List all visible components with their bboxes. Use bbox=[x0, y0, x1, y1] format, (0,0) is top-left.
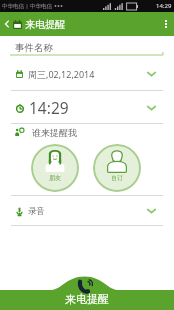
button[interactable]: 14:29 bbox=[0, 91, 174, 124]
button[interactable]: More options bbox=[158, 12, 174, 36]
button[interactable]: 自订 bbox=[93, 144, 141, 192]
button[interactable]: 事件名称 bbox=[0, 36, 174, 54]
button[interactable]: 谁来提醒我 bbox=[0, 124, 174, 140]
button[interactable]: 录音 bbox=[0, 196, 174, 226]
staticText: 谁来提醒我 bbox=[32, 127, 77, 138]
staticText: 中华电信 | 中华电信 bbox=[2, 2, 52, 10]
staticText: 14:29 bbox=[29, 97, 69, 118]
button[interactable]: Back bbox=[0, 12, 13, 36]
button[interactable]: 周三,02,12,2014 bbox=[0, 56, 174, 91]
staticText: 来电提醒 bbox=[25, 18, 65, 31]
button[interactable]: 朋友 bbox=[31, 144, 79, 192]
button[interactable]: 来电提醒 bbox=[0, 274, 174, 310]
staticText: 14:29 bbox=[156, 2, 172, 10]
staticText: 录音 bbox=[28, 206, 45, 217]
staticText: 自订 bbox=[111, 174, 123, 182]
staticText: 事件名称 bbox=[15, 42, 53, 54]
staticText: 周三,02,12,2014 bbox=[28, 68, 95, 80]
staticText: 朋友 bbox=[49, 174, 61, 182]
staticText: 来电提醒 bbox=[65, 292, 109, 306]
